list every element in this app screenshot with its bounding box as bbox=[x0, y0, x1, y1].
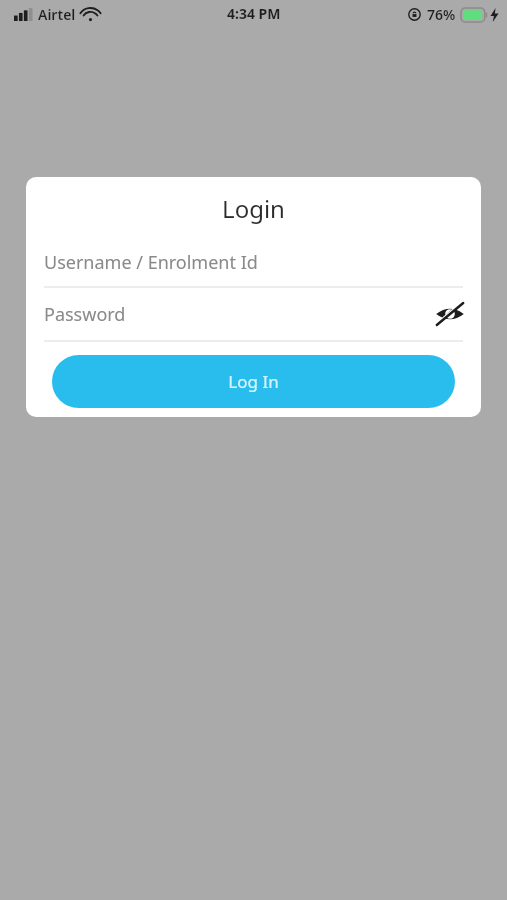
staticText: Login bbox=[222, 192, 285, 225]
staticText: Username / Enrolment Id bbox=[44, 250, 258, 275]
staticText: Password bbox=[44, 302, 126, 327]
staticText: Airtel bbox=[38, 5, 76, 24]
staticText: Log In bbox=[228, 370, 279, 393]
staticText: 76% bbox=[427, 5, 456, 24]
button[interactable]: Log In bbox=[52, 355, 455, 408]
button[interactable]: Show password bbox=[432, 296, 468, 332]
button[interactable]: Password bbox=[26, 288, 481, 340]
staticText: 4:34 PM bbox=[227, 4, 281, 23]
button[interactable]: Username / Enrolment Id bbox=[26, 239, 481, 286]
